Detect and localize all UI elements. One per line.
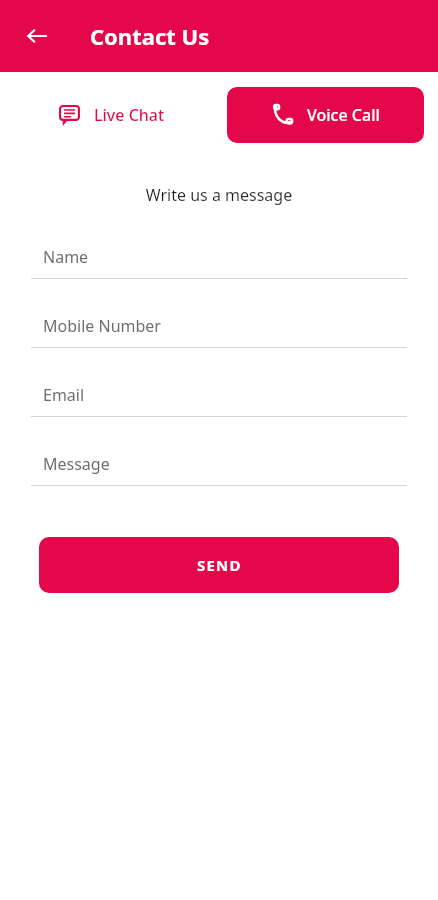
staticText: Write us a message — [25, 184, 413, 206]
staticText: Message — [43, 453, 110, 475]
staticText: SEND — [197, 555, 242, 575]
button[interactable]: Name — [25, 235, 413, 304]
button[interactable]: Message — [25, 442, 413, 511]
button[interactable]: Mobile Number — [25, 304, 413, 373]
staticText: Contact Us — [90, 21, 210, 51]
staticText: Name — [43, 246, 89, 268]
staticText: Mobile Number — [43, 315, 161, 337]
staticText: Voice Call — [307, 104, 380, 126]
button[interactable]: Voice Call — [227, 87, 424, 143]
button[interactable]: Back — [16, 15, 58, 57]
staticText: Email — [43, 384, 85, 406]
button[interactable]: Email — [25, 373, 413, 442]
button[interactable]: SEND — [39, 537, 399, 593]
button[interactable]: Live Chat — [14, 87, 210, 143]
staticText: Live Chat — [94, 104, 165, 126]
